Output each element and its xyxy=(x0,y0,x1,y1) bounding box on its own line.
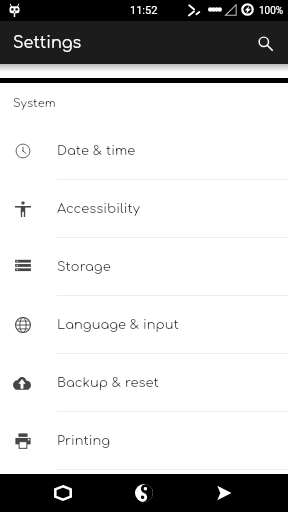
staticText: Storage xyxy=(57,260,111,274)
staticText: 11:52 xyxy=(130,4,158,17)
button[interactable]: Accessibility xyxy=(0,180,288,238)
button[interactable]: Backup & reset xyxy=(0,354,288,412)
button[interactable]: Settings xyxy=(0,21,288,64)
button[interactable]: Storage xyxy=(0,238,288,296)
staticText: Accessibility xyxy=(57,202,140,216)
button[interactable]: Date & time xyxy=(0,122,288,180)
staticText: 100% xyxy=(259,5,284,17)
staticText: Language & input xyxy=(57,318,179,332)
button[interactable]: Printing xyxy=(0,412,288,470)
staticText: Settings xyxy=(13,34,82,52)
button[interactable]: Language & input xyxy=(0,296,288,354)
staticText: Backup & reset xyxy=(57,376,159,390)
button[interactable]: Recents xyxy=(200,474,248,512)
button[interactable]: Search xyxy=(250,28,280,58)
button[interactable]: Home xyxy=(120,474,168,512)
button[interactable]: Back xyxy=(39,474,87,512)
staticText: Printing xyxy=(57,434,111,448)
staticText: System xyxy=(13,97,56,110)
staticText: Date & time xyxy=(57,144,136,158)
